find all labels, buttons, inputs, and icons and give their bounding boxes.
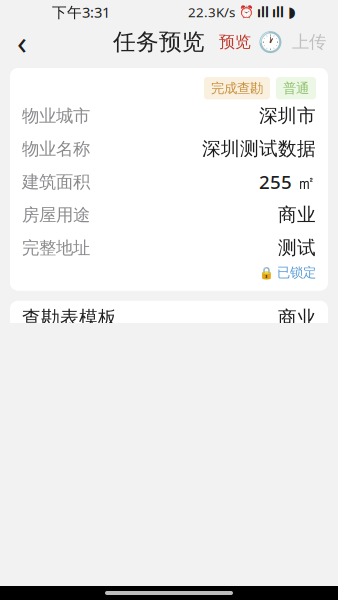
staticText: 255 ㎡ <box>259 169 316 194</box>
staticText: 下午3:31 <box>52 2 110 22</box>
button[interactable]: 预览 <box>217 32 253 52</box>
staticText: 深圳市 <box>259 104 316 127</box>
button[interactable]: 上传 <box>292 31 326 53</box>
staticText: 完整地址 <box>22 237 90 258</box>
staticText: 普通 <box>283 80 309 96</box>
staticText: 任务预览 <box>113 28 205 56</box>
staticText: 22.3K/s <box>188 3 235 21</box>
staticText: 建筑面积 <box>22 171 90 192</box>
staticText: ‹ <box>17 21 27 63</box>
staticText: 深圳测试数据 <box>202 137 316 160</box>
staticText: 物业城市 <box>22 105 90 126</box>
staticText: 商业 <box>278 203 316 226</box>
button[interactable]: 历史记录 <box>260 32 280 52</box>
staticText: 房屋用途 <box>22 204 90 225</box>
staticText: 上门时间 <box>22 579 98 600</box>
staticText: 商业 <box>278 306 316 329</box>
button[interactable]: 返回 <box>0 24 44 60</box>
staticText: 测试 <box>278 236 316 259</box>
staticText: 完成查勘 <box>211 80 263 96</box>
staticText: ıll <box>257 3 269 21</box>
staticText: 预览 <box>219 32 251 52</box>
staticText: 已锁定 <box>277 264 316 281</box>
staticText: 上传 <box>292 31 326 53</box>
staticText: ıll <box>272 3 284 21</box>
staticText: ◗ <box>288 4 296 20</box>
staticText: 物业名称 <box>22 138 90 159</box>
staticText: 🔒 <box>259 266 274 279</box>
staticText: 🕐 <box>257 31 282 53</box>
staticText: ⏰ <box>239 5 254 19</box>
staticText: 查勘表模板 <box>22 306 117 329</box>
